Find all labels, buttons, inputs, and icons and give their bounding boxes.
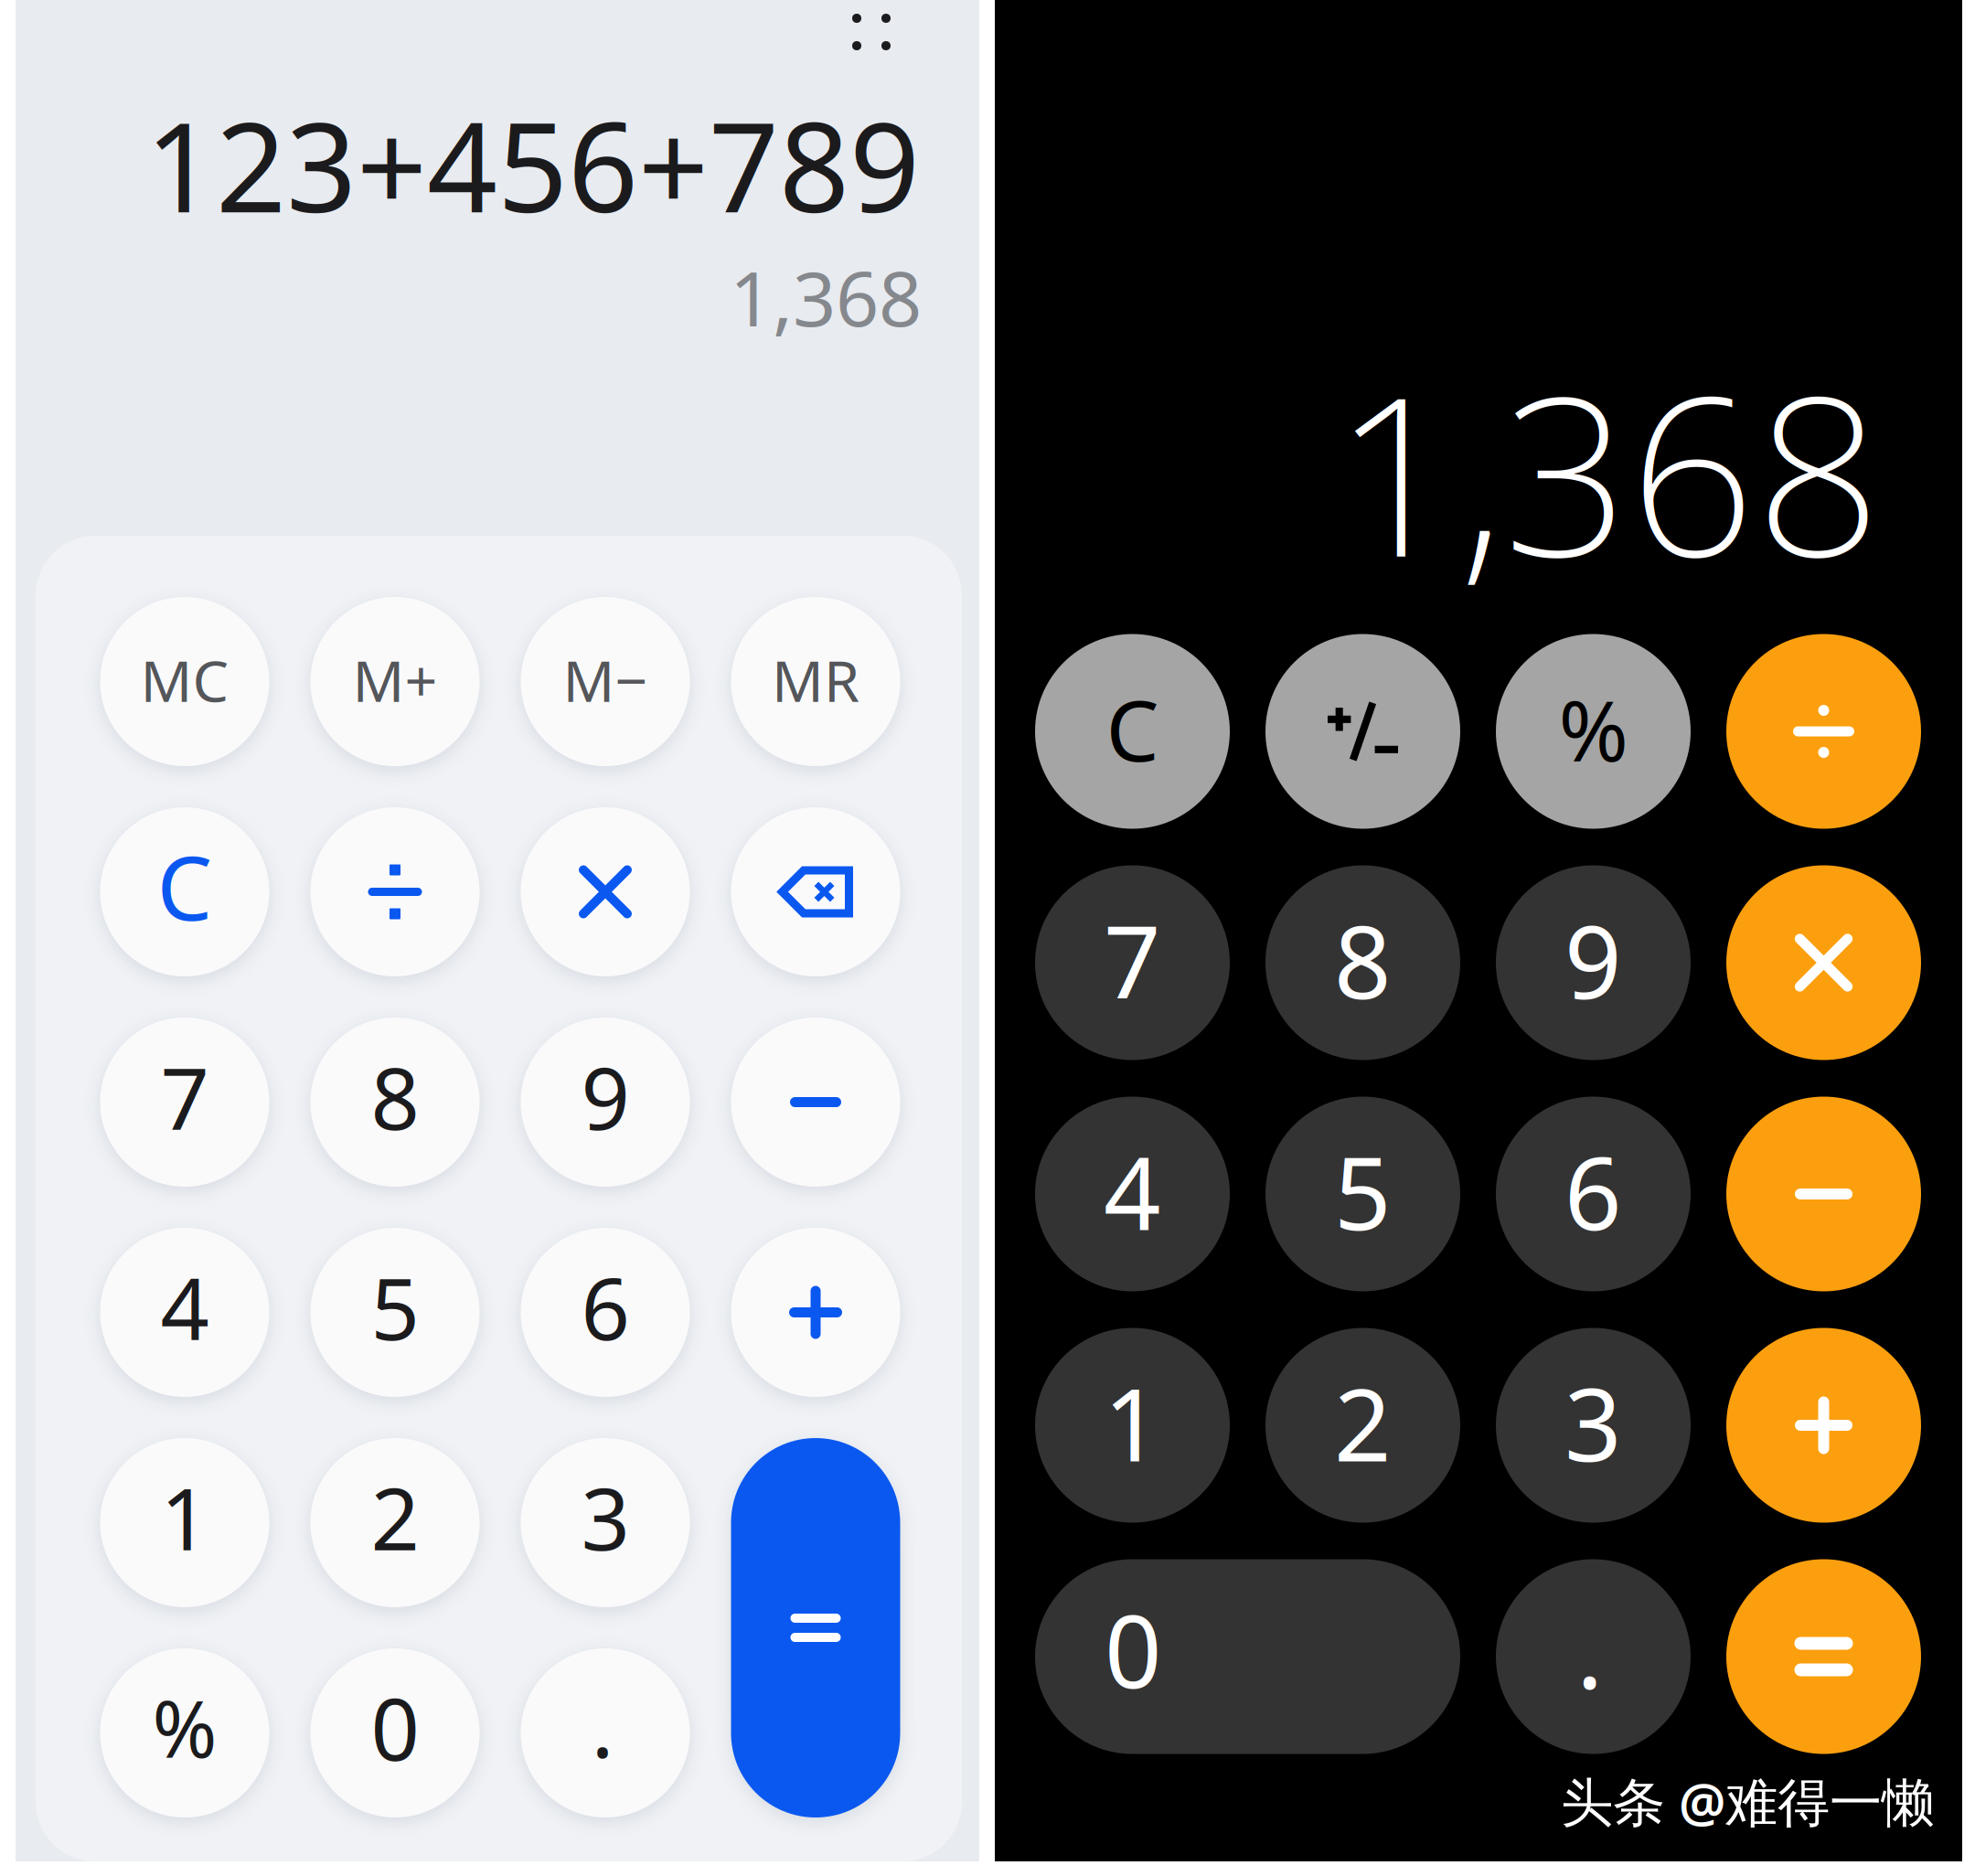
staticText: % [1559, 673, 1628, 785]
staticText: 1,368 [1333, 324, 1882, 617]
button[interactable]: . [1496, 1559, 1691, 1754]
button[interactable]: Plus minus [1265, 634, 1460, 829]
staticText: 5 [371, 1250, 419, 1363]
button[interactable]: 4 [100, 1228, 269, 1397]
staticText: 2 [1334, 1356, 1392, 1489]
button[interactable]: 8 [1265, 865, 1460, 1060]
button[interactable]: Equals [731, 1438, 900, 1817]
staticText: 0 [1105, 1583, 1162, 1716]
button[interactable]: M− [521, 597, 690, 766]
staticText: . [591, 1668, 614, 1781]
button[interactable]: MC [100, 597, 269, 766]
button[interactable]: C [100, 807, 269, 976]
staticText: M+ [352, 642, 438, 718]
button[interactable]: Multiply [1726, 865, 1921, 1060]
staticText: 7 [1104, 894, 1161, 1026]
button[interactable]: 0 [310, 1648, 480, 1817]
staticText: 0 [371, 1671, 419, 1784]
staticText: . [1576, 1583, 1603, 1716]
button[interactable]: 3 [1496, 1328, 1691, 1523]
button[interactable]: 1 [1035, 1328, 1230, 1523]
staticText: 3 [581, 1460, 630, 1574]
button[interactable]: 4 [1035, 1097, 1230, 1291]
button[interactable]: 7 [1035, 865, 1230, 1060]
button[interactable]: 5 [310, 1228, 480, 1397]
button[interactable]: . [521, 1648, 690, 1817]
staticText: 3 [1564, 1356, 1622, 1489]
staticText: MC [140, 642, 229, 718]
button[interactable]: Delete [731, 807, 900, 976]
staticText: 6 [581, 1250, 630, 1363]
button[interactable]: 6 [521, 1228, 690, 1397]
button[interactable]: MR [731, 597, 900, 766]
button[interactable]: 0 [1035, 1559, 1460, 1754]
button[interactable]: 3 [521, 1438, 690, 1607]
button[interactable]: C [1035, 634, 1230, 829]
staticText: 2 [371, 1460, 419, 1574]
button[interactable]: 6 [1496, 1097, 1691, 1291]
staticText: 8 [371, 1040, 419, 1153]
button[interactable]: 9 [1496, 865, 1691, 1060]
button[interactable]: 5 [1265, 1097, 1460, 1291]
button[interactable]: Plus [1726, 1328, 1921, 1523]
button[interactable]: Equals [1726, 1559, 1921, 1754]
button[interactable]: Divide [1726, 634, 1921, 829]
staticText: 9 [1564, 894, 1622, 1026]
button[interactable]: More [826, 0, 917, 78]
staticText: MR [772, 642, 859, 718]
button[interactable]: Divide [310, 807, 480, 976]
staticText: 1 [1104, 1356, 1161, 1489]
staticText: 4 [1104, 1125, 1161, 1258]
staticText: 8 [1334, 894, 1392, 1026]
button[interactable]: % [1496, 634, 1691, 829]
button[interactable]: Plus [731, 1228, 900, 1397]
staticText: 6 [1564, 1125, 1622, 1258]
staticText: 5 [1334, 1125, 1392, 1258]
button[interactable]: 8 [310, 1018, 480, 1187]
button[interactable]: 2 [1265, 1328, 1460, 1523]
staticText: % [152, 1676, 217, 1779]
button[interactable]: % [100, 1648, 269, 1817]
staticText: C [1106, 673, 1159, 785]
staticText: 1 [160, 1460, 209, 1574]
button[interactable]: Minus [731, 1018, 900, 1187]
button[interactable]: 2 [310, 1438, 480, 1607]
button[interactable]: 9 [521, 1018, 690, 1187]
staticText: 7 [160, 1040, 209, 1153]
staticText: 9 [581, 1040, 630, 1153]
button[interactable]: M+ [310, 597, 480, 766]
button[interactable]: 1 [100, 1438, 269, 1607]
staticText: 123+456+789 [145, 83, 920, 246]
staticText: 1,368 [730, 247, 922, 347]
staticText: M− [563, 642, 648, 718]
button[interactable]: 7 [100, 1018, 269, 1187]
staticText: 头条 @难得一懒 [1561, 1766, 1934, 1836]
staticText: C [157, 828, 213, 945]
button[interactable]: Minus [1726, 1097, 1921, 1291]
staticText: 4 [160, 1250, 209, 1363]
button[interactable]: Multiply [521, 807, 690, 976]
